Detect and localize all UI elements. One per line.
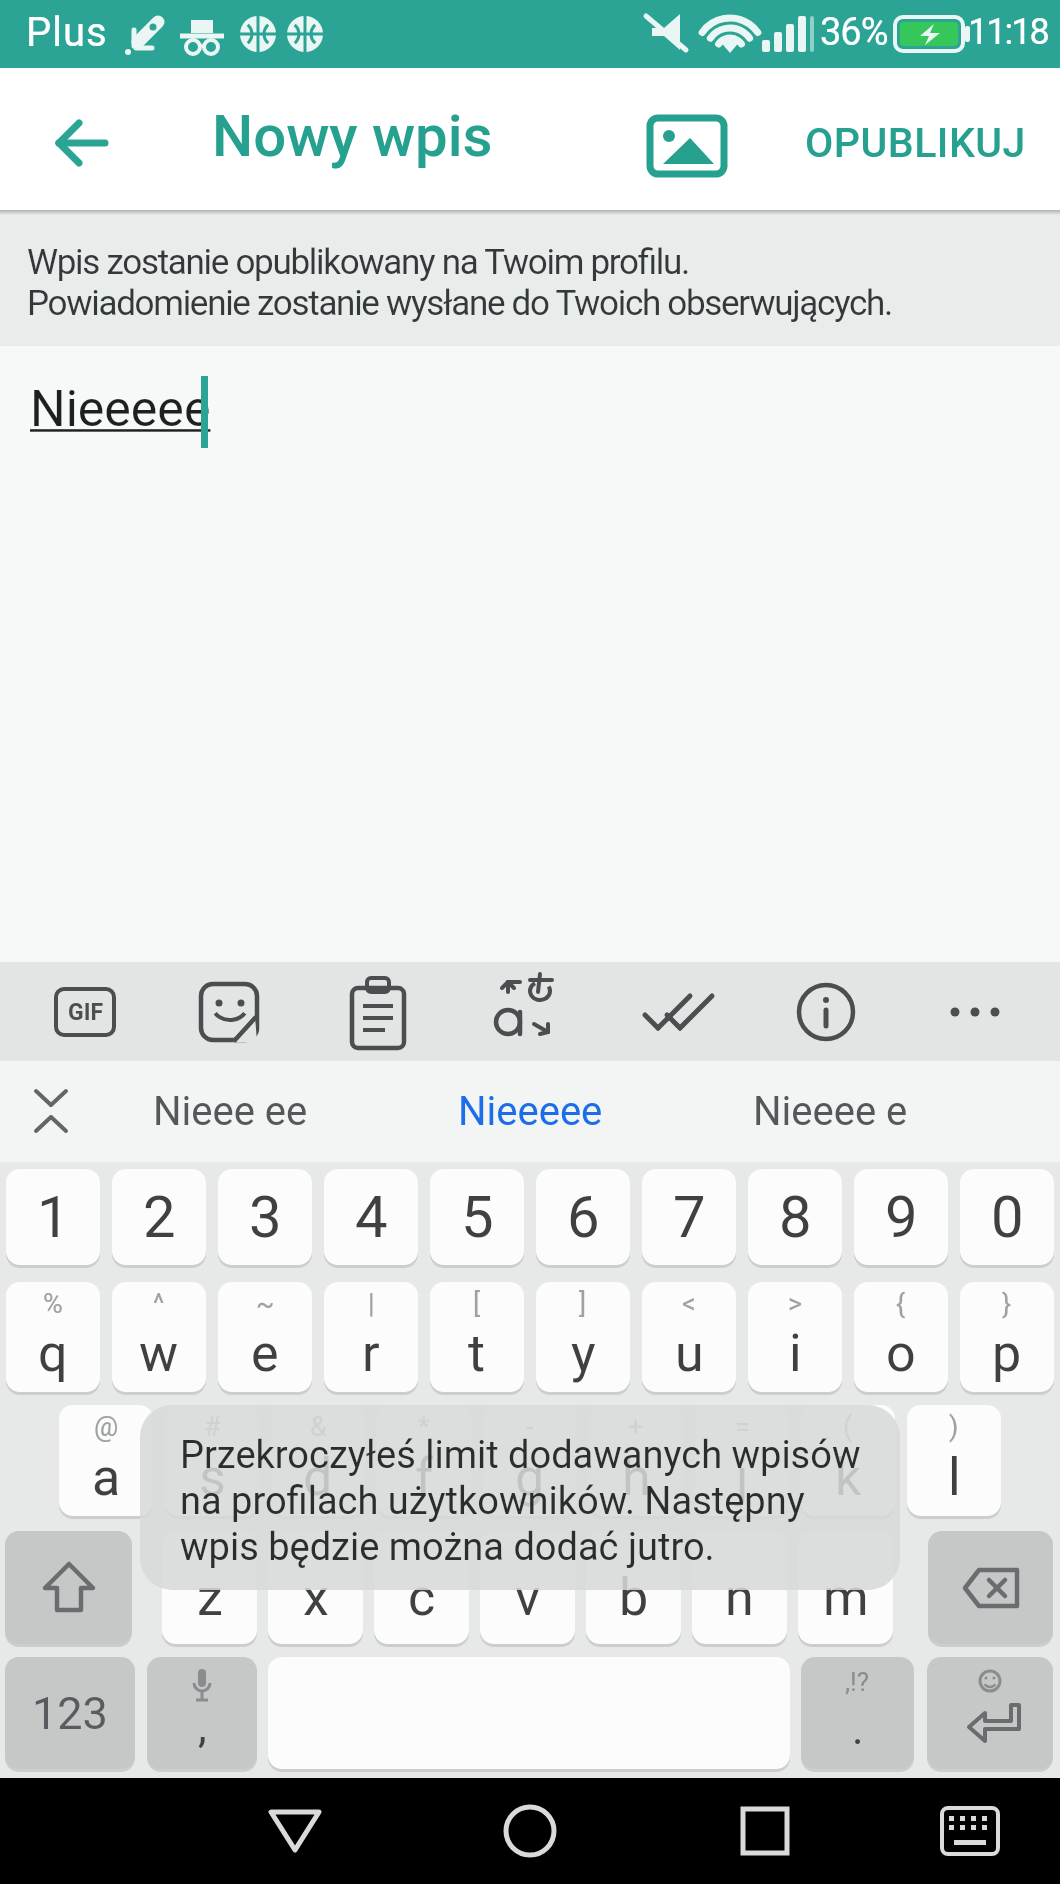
staticText: l [948,1447,961,1508]
staticText: ,!? [845,1667,870,1697]
button[interactable]: 2 [112,1169,206,1265]
button[interactable]: n [692,1531,787,1644]
button[interactable]: Nieee ee [110,1061,350,1162]
button[interactable] [928,1531,1053,1644]
button[interactable]: ( [801,1405,895,1516]
button[interactable]: # [165,1405,259,1516]
button[interactable]: 9 [854,1169,948,1265]
staticText: q [38,1323,68,1384]
button[interactable]: 4 [324,1169,418,1265]
button[interactable]: z [162,1531,257,1644]
staticText: 2 [143,1183,176,1251]
staticText: Nieeeee [458,1088,603,1135]
button[interactable] [927,1657,1053,1769]
staticText: h [622,1447,651,1508]
staticText: . [852,1703,864,1755]
staticText: 0 [991,1183,1024,1251]
button[interactable]: 7 [642,1169,736,1265]
button[interactable]: & [271,1405,365,1516]
button[interactable]: 1 [6,1169,100,1265]
button[interactable]: ~ [218,1282,312,1392]
button[interactable] [920,1796,1020,1866]
staticText: 3 [249,1183,282,1251]
staticText: 11:18 [968,11,1048,53]
button[interactable]: m [798,1531,893,1644]
staticText: b [619,1567,649,1628]
button[interactable]: c [374,1531,469,1644]
button[interactable]: 6 [536,1169,630,1265]
button[interactable]: % [6,1282,100,1392]
staticText: * [418,1411,430,1443]
staticText: + [628,1411,644,1443]
staticText: # [204,1411,221,1443]
button[interactable]: , [147,1657,257,1769]
button[interactable]: b [586,1531,681,1644]
staticText: = [735,1411,750,1443]
staticText: 36% [820,10,888,55]
staticText: Nieeee e [753,1088,908,1135]
staticText: - [526,1411,534,1443]
button[interactable]: ^ [112,1282,206,1392]
staticText: ~ [256,1288,275,1320]
staticText: Nieeeee [30,380,211,439]
staticText: GIF [68,999,103,1026]
button[interactable] [635,75,739,159]
button[interactable]: 0 [960,1169,1054,1265]
staticText: } [1002,1288,1012,1320]
staticText: 6 [567,1183,600,1251]
staticText: Wpis zostanie opublikowany na Twoim prof… [27,242,892,323]
button[interactable]: OPUBLIKUJ [790,93,1040,193]
staticText: 123 [32,1687,108,1740]
staticText: { [896,1288,906,1320]
button[interactable]: + [589,1405,683,1516]
button[interactable]: < [642,1282,736,1392]
button[interactable]: > [748,1282,842,1392]
staticText: o [886,1323,916,1384]
button[interactable]: v [480,1531,575,1644]
staticText: v [515,1567,541,1628]
button[interactable] [480,1796,580,1866]
staticText: ) [949,1411,959,1443]
staticText: OPUBLIKUJ [805,119,1026,167]
staticText: r [362,1323,380,1384]
button[interactable]: - [483,1405,577,1516]
staticText: 9 [885,1183,918,1251]
staticText: 1 [37,1183,70,1251]
staticText: a [92,1447,121,1508]
staticText: 4 [355,1183,388,1251]
staticText: s [199,1447,226,1508]
staticText: c [408,1567,436,1628]
button[interactable] [5,1531,132,1644]
button[interactable]: 3 [218,1169,312,1265]
button[interactable]: } [960,1282,1054,1392]
button[interactable]: ] [536,1282,630,1392]
button[interactable]: 123 [5,1657,135,1769]
button[interactable]: x [268,1531,363,1644]
staticText: 7 [673,1183,706,1251]
button[interactable] [39,105,119,181]
staticText: u [675,1323,704,1384]
button[interactable]: GIF [54,987,116,1037]
button[interactable]: [ [430,1282,524,1392]
staticText: ] [579,1288,587,1320]
button[interactable]: | [324,1282,418,1392]
button[interactable]: Nieeee e [710,1061,950,1162]
button[interactable]: ,!? [801,1657,914,1769]
staticText: | [368,1288,375,1320]
button[interactable]: { [854,1282,948,1392]
button[interactable]: 8 [748,1169,842,1265]
staticText: t [468,1323,486,1384]
staticText: Nieee ee [153,1088,308,1135]
button[interactable]: * [377,1405,471,1516]
staticText: 8 [779,1183,812,1251]
button[interactable] [245,1796,345,1866]
button[interactable] [715,1796,815,1866]
button[interactable]: Nieeeee [400,1061,660,1162]
staticText: d [303,1447,333,1508]
button[interactable]: = [695,1405,789,1516]
button[interactable]: 5 [430,1169,524,1265]
staticText: e [251,1323,279,1384]
button[interactable]: ) [907,1405,1001,1516]
button[interactable]: @ [59,1405,153,1516]
